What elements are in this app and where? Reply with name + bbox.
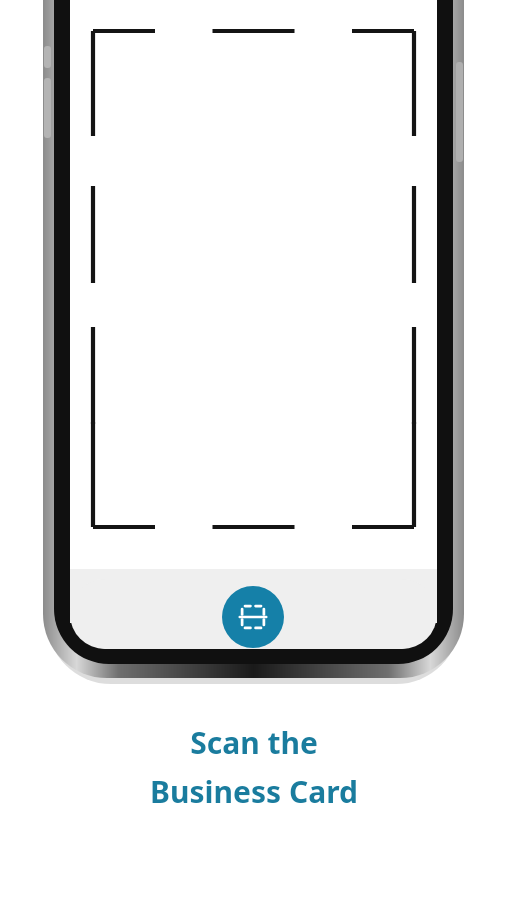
button[interactable]: Scan business card xyxy=(222,586,284,648)
staticText: Business Card xyxy=(150,771,358,812)
staticText: Scan the xyxy=(190,722,318,763)
